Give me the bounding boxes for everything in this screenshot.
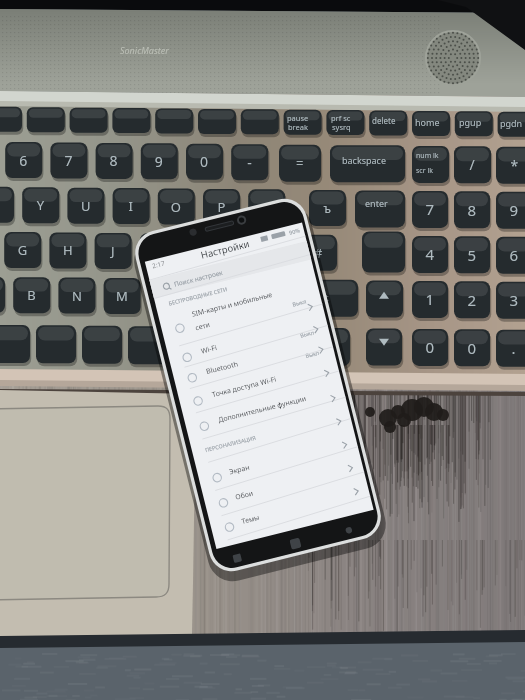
button[interactable]	[0, 0, 525, 700]
